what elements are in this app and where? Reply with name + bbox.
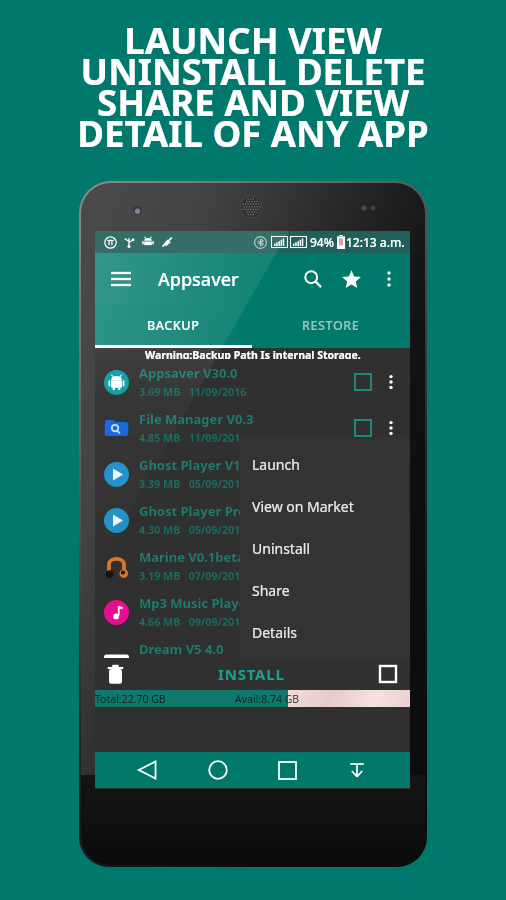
- staticText: 4.66 MB 09/09/201: [139, 615, 241, 630]
- staticText: Share: [252, 581, 290, 600]
- button[interactable]: Item options: [381, 372, 401, 392]
- button[interactable]: Ghost Player V1.: [95, 451, 410, 497]
- button[interactable]: Delete: [102, 661, 128, 687]
- button[interactable]: Launch: [240, 438, 410, 659]
- button[interactable]: RESTORE: [252, 305, 410, 345]
- button[interactable]: More options: [377, 267, 401, 291]
- staticText: Details: [252, 623, 297, 642]
- button[interactable]: View on Market: [240, 485, 410, 527]
- staticText: Appsaver: [158, 267, 239, 292]
- button[interactable]: Launch: [240, 443, 410, 485]
- button[interactable]: Dream V5 4.0: [95, 635, 410, 658]
- button[interactable]: Select: [351, 416, 375, 440]
- button[interactable]: Ghost Player Pro: [95, 497, 410, 543]
- staticText: Dream V5 4.0: [139, 640, 224, 658]
- staticText: 4.85 MB 11/09/201: [139, 431, 241, 446]
- button[interactable]: Select: [351, 508, 375, 532]
- staticText: 4.30 MB 05/09/201: [139, 523, 241, 538]
- button[interactable]: Back: [131, 753, 165, 787]
- button[interactable]: Mp3 Music Playe: [95, 589, 410, 635]
- staticText: 12:13 a.m.: [346, 234, 405, 250]
- staticText: Warning:Backup Path Is internal Storage.: [145, 348, 361, 359]
- staticText: RESTORE: [302, 317, 360, 334]
- button[interactable]: Uninstall: [240, 527, 410, 569]
- button[interactable]: BACKUP: [95, 305, 252, 345]
- staticText: Mp3 Music Playe: [139, 594, 247, 612]
- staticText: Appsaver V30.0: [139, 364, 238, 382]
- staticText: 94%: [310, 234, 334, 250]
- button[interactable]: INSTALL: [210, 660, 293, 688]
- staticText: Ghost Player V1.: [139, 456, 245, 474]
- staticText: Uninstall: [252, 539, 310, 558]
- staticText: INSTALL: [218, 664, 285, 684]
- staticText: 3.19 MB 07/09/201: [139, 569, 241, 584]
- staticText: Avail:8.74 GB: [235, 692, 300, 706]
- staticText: Ghost Player Pro: [139, 502, 247, 520]
- staticText: Total:22.70 GB: [95, 692, 166, 706]
- button[interactable]: Recent apps: [270, 753, 304, 787]
- staticText: 3.39 MB 05/09/201: [139, 477, 241, 492]
- button[interactable]: Item options: [381, 418, 401, 438]
- staticText: View on Market: [252, 497, 354, 516]
- staticText: Launch: [252, 455, 300, 474]
- staticText: BACKUP: [147, 317, 200, 334]
- button[interactable]: Select all: [375, 661, 401, 687]
- button[interactable]: Favorites: [337, 265, 365, 293]
- button[interactable]: Appsaver V30.0: [95, 359, 410, 405]
- button[interactable]: Marine V0.1beta: [95, 543, 410, 589]
- staticText: LAUNCH VIEW UNINSTALL DELETE SHARE AND V…: [77, 15, 429, 158]
- button[interactable]: Details: [240, 611, 410, 653]
- button[interactable]: Search: [299, 265, 327, 293]
- staticText: Marine V0.1beta: [139, 548, 245, 566]
- staticText: File Manager V0.3: [139, 410, 254, 428]
- button[interactable]: Navigation menu: [108, 266, 134, 292]
- button[interactable]: Download: [340, 753, 374, 787]
- button[interactable]: Select: [351, 370, 375, 394]
- staticText: 3.69 MB 11/09/2016: [139, 385, 247, 400]
- button[interactable]: File Manager V0.3: [95, 405, 410, 451]
- button[interactable]: Home: [201, 753, 235, 787]
- button[interactable]: Share: [240, 569, 410, 611]
